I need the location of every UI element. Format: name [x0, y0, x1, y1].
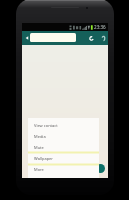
- staticText: 23:36: [94, 24, 106, 30]
- staticText: Mute: [34, 145, 44, 150]
- staticText: More: [34, 167, 44, 172]
- button[interactable]: Call: [87, 31, 95, 45]
- button[interactable]: Media: [28, 131, 99, 142]
- button[interactable]: Attach: [99, 31, 107, 45]
- button[interactable]: View contact: [28, 120, 99, 131]
- staticText: Wallpaper: [34, 156, 54, 161]
- staticText: View contact: [34, 123, 58, 128]
- button[interactable]: Mute: [28, 142, 99, 153]
- button[interactable]: [30, 33, 76, 42]
- staticText: Media: [34, 134, 46, 139]
- button[interactable]: Back: [23, 31, 30, 45]
- button[interactable]: More: [28, 164, 99, 175]
- button[interactable]: Wallpaper: [28, 153, 99, 164]
- button[interactable]: Send: [96, 164, 105, 173]
